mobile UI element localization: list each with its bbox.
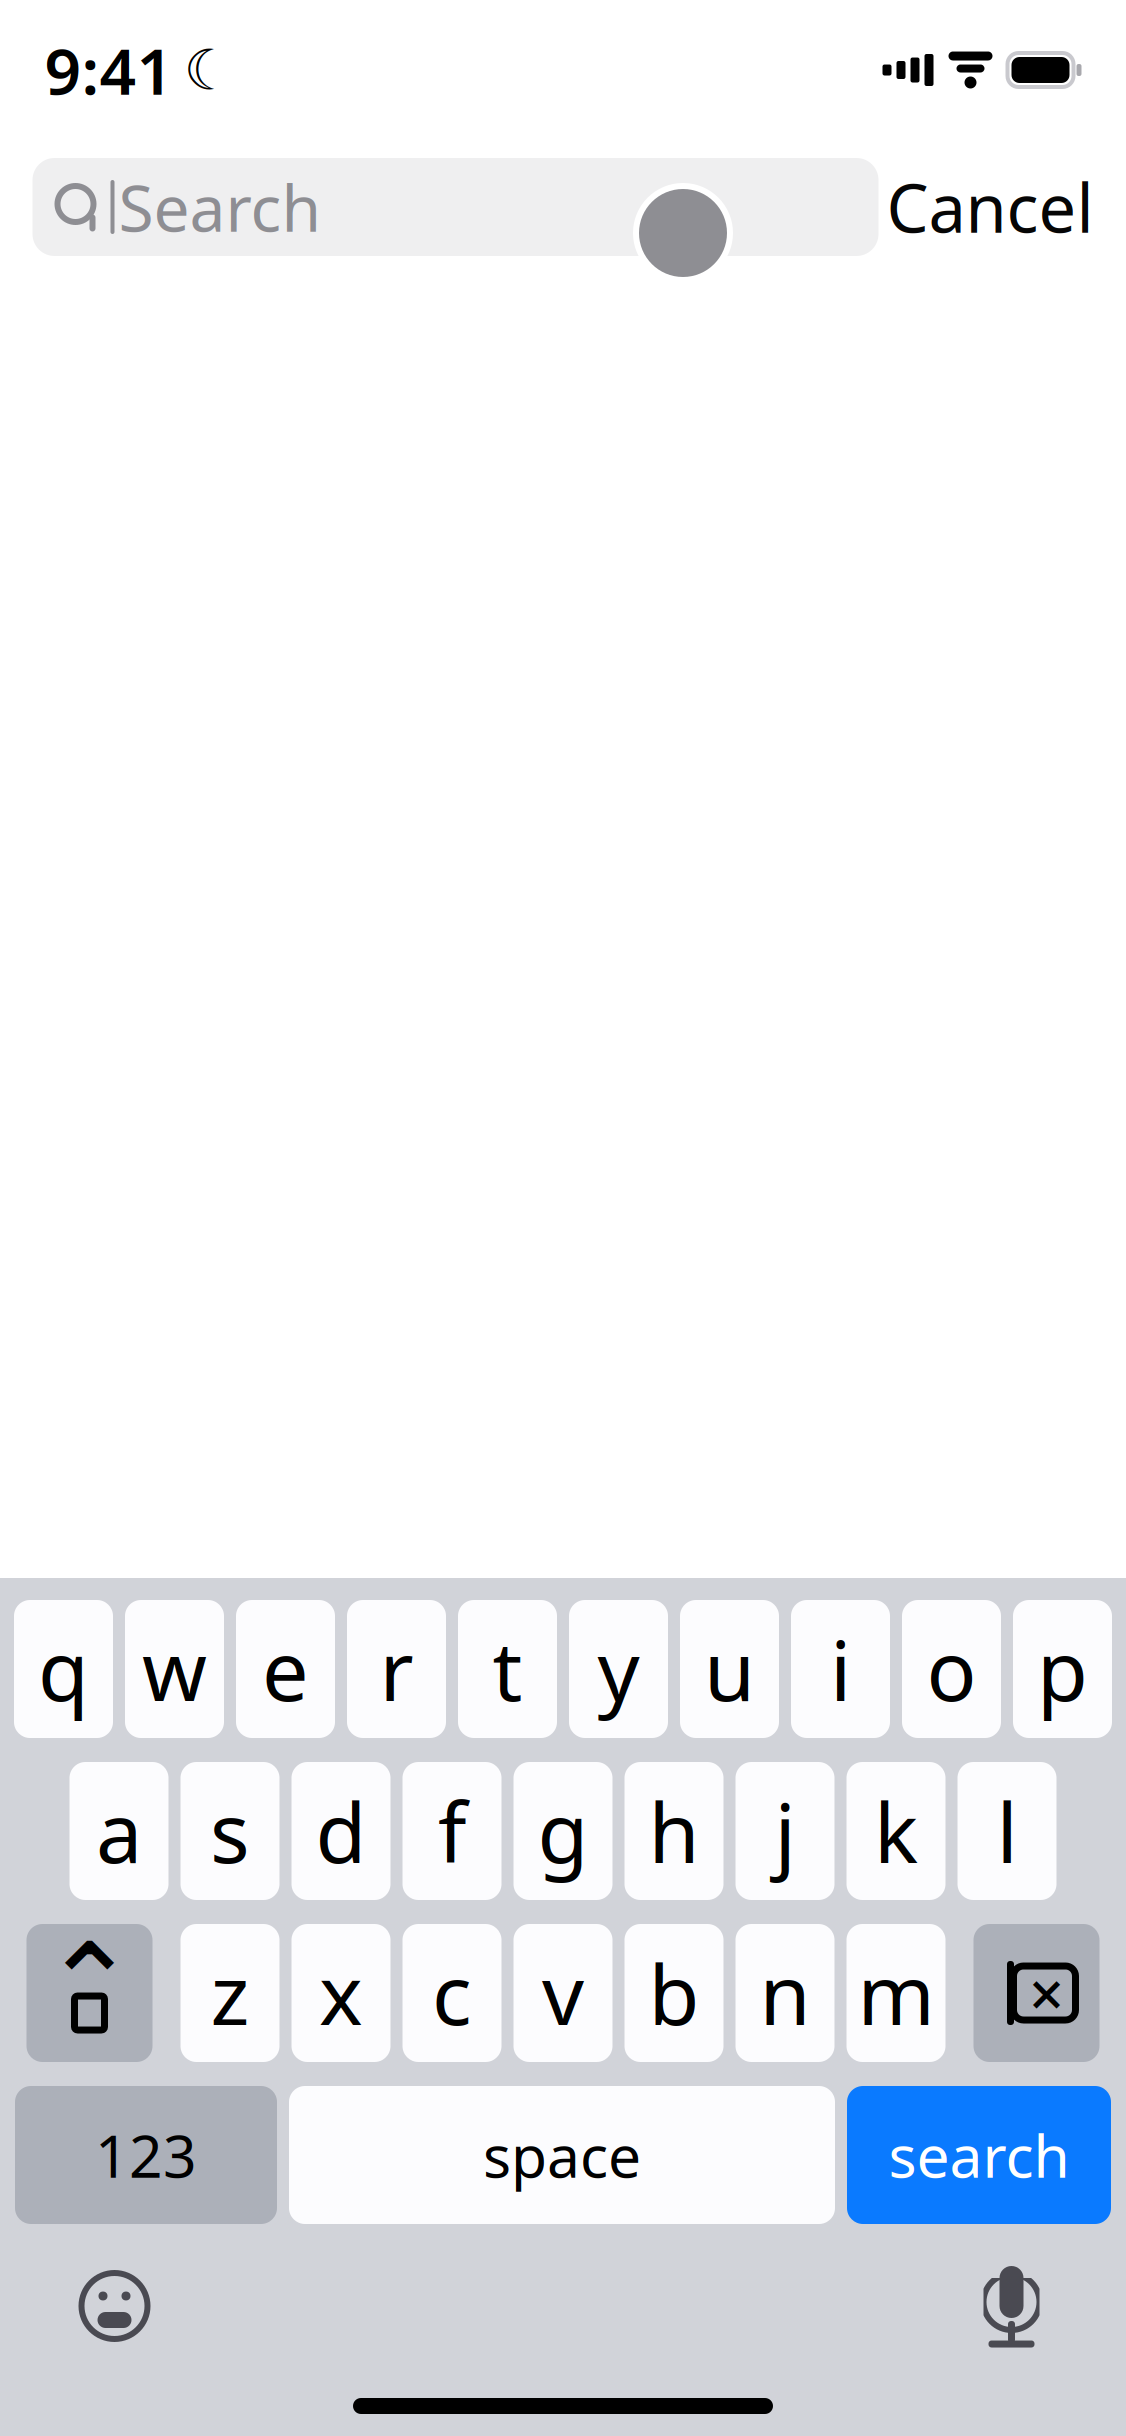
button[interactable]: Dictation bbox=[971, 2258, 1051, 2354]
button[interactable]: x bbox=[291, 1924, 390, 2062]
staticText: 9:41 bbox=[44, 27, 173, 112]
staticText: n bbox=[759, 1938, 810, 2048]
staticText: e bbox=[262, 1614, 309, 1724]
button[interactable]: l bbox=[957, 1762, 1056, 1900]
button[interactable]: a bbox=[69, 1762, 168, 1900]
button[interactable]: space bbox=[289, 2086, 835, 2224]
staticText: o bbox=[926, 1614, 976, 1724]
staticText: space bbox=[483, 2116, 641, 2194]
button[interactable]: k bbox=[846, 1762, 945, 1900]
staticText: x bbox=[319, 1938, 363, 2048]
button[interactable]: z bbox=[180, 1924, 279, 2062]
button[interactable]: y bbox=[569, 1600, 668, 1738]
button[interactable]: g bbox=[513, 1762, 612, 1900]
staticText: j bbox=[774, 1776, 795, 1886]
staticText: r bbox=[379, 1614, 413, 1724]
button[interactable]: b bbox=[624, 1924, 723, 2062]
staticText: q bbox=[38, 1614, 89, 1724]
button[interactable]: Shift bbox=[26, 1924, 152, 2062]
button[interactable]: Delete bbox=[973, 1924, 1099, 2062]
staticText: Cancel bbox=[886, 163, 1093, 251]
button[interactable]: i bbox=[791, 1600, 890, 1738]
staticText: ☾ bbox=[183, 38, 233, 102]
staticText: h bbox=[648, 1776, 699, 1886]
staticText: g bbox=[537, 1776, 588, 1886]
button[interactable]: d bbox=[291, 1762, 390, 1900]
button[interactable]: e bbox=[236, 1600, 335, 1738]
button[interactable]: c bbox=[402, 1924, 501, 2062]
button[interactable]: Emoji bbox=[74, 2266, 154, 2346]
staticText: p bbox=[1037, 1614, 1088, 1724]
staticText: × bbox=[1029, 1952, 1064, 2034]
staticText: w bbox=[142, 1614, 207, 1724]
staticText: Search bbox=[118, 164, 321, 249]
button[interactable]: w bbox=[125, 1600, 224, 1738]
staticText: i bbox=[830, 1614, 851, 1724]
staticText: search bbox=[888, 2116, 1069, 2194]
staticText: 123 bbox=[95, 2116, 197, 2194]
staticText: ⌃ bbox=[41, 1920, 137, 2050]
button[interactable]: Cancel bbox=[886, 158, 1093, 256]
staticText: s bbox=[210, 1776, 250, 1886]
button[interactable]: t bbox=[458, 1600, 557, 1738]
button[interactable]: o bbox=[902, 1600, 1001, 1738]
button[interactable]: n bbox=[735, 1924, 834, 2062]
staticText: d bbox=[315, 1776, 366, 1886]
button[interactable]: j bbox=[735, 1762, 834, 1900]
button[interactable]: s bbox=[180, 1762, 279, 1900]
staticText: y bbox=[597, 1614, 639, 1724]
staticText: l bbox=[996, 1776, 1017, 1886]
button[interactable]: p bbox=[1013, 1600, 1112, 1738]
staticText: v bbox=[542, 1938, 584, 2048]
staticText: a bbox=[96, 1776, 142, 1886]
staticText: c bbox=[432, 1938, 472, 2048]
staticText: m bbox=[857, 1938, 934, 2048]
button[interactable]: search bbox=[847, 2086, 1111, 2224]
button[interactable]: m bbox=[846, 1924, 945, 2062]
button[interactable]: u bbox=[680, 1600, 779, 1738]
staticText: u bbox=[704, 1614, 755, 1724]
button[interactable]: r bbox=[347, 1600, 446, 1738]
staticText: k bbox=[874, 1776, 918, 1886]
button[interactable]: q bbox=[14, 1600, 113, 1738]
button[interactable]: h bbox=[624, 1762, 723, 1900]
staticText: f bbox=[438, 1776, 466, 1886]
button[interactable]: f bbox=[402, 1762, 501, 1900]
staticText: t bbox=[492, 1614, 522, 1724]
button[interactable]: Search bbox=[32, 158, 878, 256]
staticText: b bbox=[648, 1938, 699, 2048]
button[interactable]: v bbox=[513, 1924, 612, 2062]
button[interactable]: 123 bbox=[15, 2086, 277, 2224]
staticText: z bbox=[210, 1938, 249, 2048]
